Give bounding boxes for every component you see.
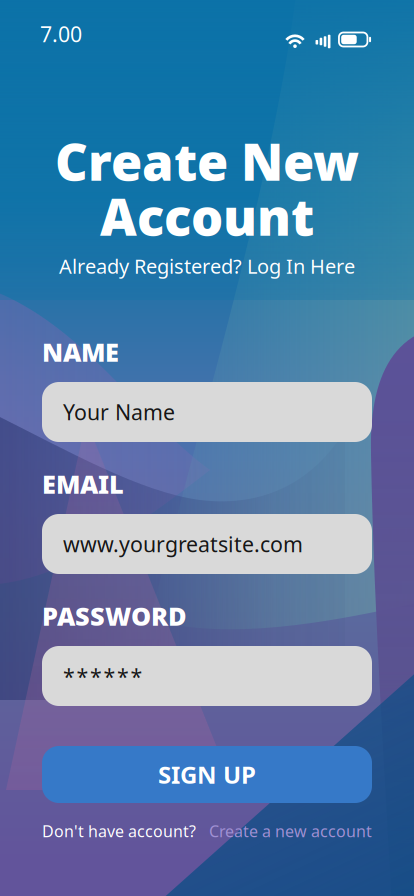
button[interactable]: Already Registered? Log In Here	[59, 253, 355, 279]
staticText: *	[76, 662, 88, 690]
staticText: Already Registered? Log In Here	[59, 253, 355, 279]
staticText: PASSWORD	[42, 599, 187, 633]
staticText: EMAIL	[42, 467, 124, 501]
button[interactable]: Wi‑Fi	[284, 31, 306, 47]
staticText: *	[103, 662, 115, 690]
button[interactable]: Your Name	[42, 382, 372, 442]
staticText: SIGN UP	[158, 759, 256, 790]
staticText: *	[63, 662, 75, 690]
staticText: 7.00	[40, 20, 82, 48]
button[interactable]: *	[42, 646, 372, 706]
staticText: Don't have account?	[42, 820, 196, 842]
staticText: *	[117, 662, 129, 690]
staticText: *	[90, 662, 102, 690]
staticText: Create a new account	[209, 820, 372, 842]
button[interactable]: Create a new account	[209, 820, 372, 842]
staticText: Account	[100, 182, 314, 250]
button[interactable]: SIGN UP	[42, 746, 372, 803]
staticText: *	[130, 662, 142, 690]
staticText: www.yourgreatsite.com	[63, 530, 303, 558]
button[interactable]: Cellular signal	[315, 30, 330, 44]
staticText: Create New	[55, 127, 359, 195]
button[interactable]: Don't have account?	[42, 820, 196, 842]
staticText: NAME	[42, 335, 119, 369]
button[interactable]: Battery	[339, 32, 371, 46]
staticText: Your Name	[63, 398, 175, 426]
button[interactable]: www.yourgreatsite.com	[42, 514, 372, 574]
